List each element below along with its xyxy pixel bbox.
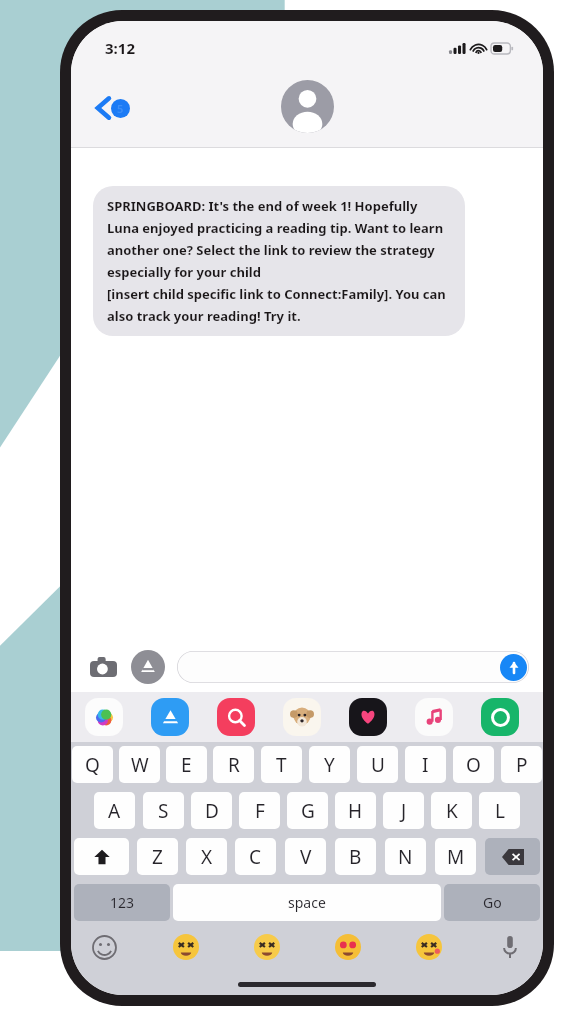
button[interactable]: Emoji 3 [333,932,363,962]
button[interactable]: Emoji 4 [414,932,444,962]
staticText: K [446,798,458,824]
button[interactable]: W [119,746,160,783]
staticText: Q [85,752,100,778]
button[interactable]: Dictation [495,932,525,962]
staticText: 3:12 [105,38,135,58]
button[interactable]: G [287,792,328,829]
button[interactable]: App 4 [349,698,387,736]
staticText: H [348,798,363,824]
staticText: N [398,844,413,870]
staticText: 123 [110,893,135,912]
staticText: A [108,798,121,824]
button[interactable]: E [166,746,207,783]
button[interactable]: A [94,792,135,829]
staticText: I [422,752,429,778]
button[interactable]: App 3 [283,698,321,736]
button[interactable]: 123 [74,884,170,921]
button[interactable]: X [186,838,227,875]
button[interactable]: F [239,792,280,829]
staticText: T [276,752,287,778]
button[interactable]: Backspace [485,838,540,875]
button[interactable]: Q [72,746,113,783]
button[interactable]: Z [137,838,178,875]
staticText: O [466,752,481,778]
button[interactable]: App 6 [481,698,519,736]
button[interactable]: space [173,884,441,921]
button[interactable]: App 0 [85,698,123,736]
button[interactable]: Send [500,654,527,681]
button[interactable]: SPRINGBOARD: It's the end of week 1! Hop… [93,186,465,336]
button[interactable]: Emoji 2 [252,932,282,962]
staticText: Z [152,844,163,870]
button[interactable]: Go [444,884,540,921]
button[interactable]: Camera [85,649,121,685]
button[interactable]: L [479,792,520,829]
button[interactable]: T [261,746,302,783]
button[interactable]: S [143,792,184,829]
button[interactable]: App 5 [415,698,453,736]
staticText: C [249,844,262,870]
staticText: M [447,844,465,870]
staticText: B [349,844,362,870]
staticText: F [255,798,265,824]
button[interactable]: C [235,838,276,875]
staticText: E [181,752,192,778]
button[interactable]: Emoji keyboard [89,932,119,962]
button[interactable]: Send [177,651,529,683]
staticText: space [288,893,326,912]
staticText: W [131,752,149,778]
button[interactable]: I [405,746,446,783]
button[interactable]: B [335,838,376,875]
button[interactable]: K [431,792,472,829]
staticText: X [201,844,213,870]
staticText: U [371,752,385,778]
button[interactable]: O [453,746,494,783]
button[interactable]: D [191,792,232,829]
staticText: R [228,752,240,778]
button[interactable]: V [285,838,326,875]
staticText: S [158,798,169,824]
button[interactable]: R [213,746,254,783]
staticText: J [401,798,407,824]
staticText: G [301,798,315,824]
button[interactable]: P [501,746,542,783]
button[interactable]: App 1 [151,698,189,736]
button[interactable]: J [383,792,424,829]
button[interactable]: N [385,838,426,875]
button[interactable]: Shift [74,838,129,875]
button[interactable]: Y [309,746,350,783]
button[interactable]: App Store [131,650,165,684]
staticText: P [516,752,528,778]
button[interactable]: App 2 [217,698,255,736]
button[interactable]: Back, 5 unread [91,89,136,127]
staticText: V [300,844,312,870]
staticText: Go [483,893,502,912]
button[interactable]: Contact profile [281,80,334,133]
button[interactable]: H [335,792,376,829]
staticText: Y [324,752,335,778]
button[interactable]: U [357,746,398,783]
staticText: L [495,798,505,824]
staticText: 5 [117,101,124,116]
staticText: D [205,798,219,824]
button[interactable]: Emoji 1 [171,932,201,962]
staticText: SPRINGBOARD: It's the end of week 1! Hop… [107,197,451,325]
button[interactable]: M [435,838,476,875]
